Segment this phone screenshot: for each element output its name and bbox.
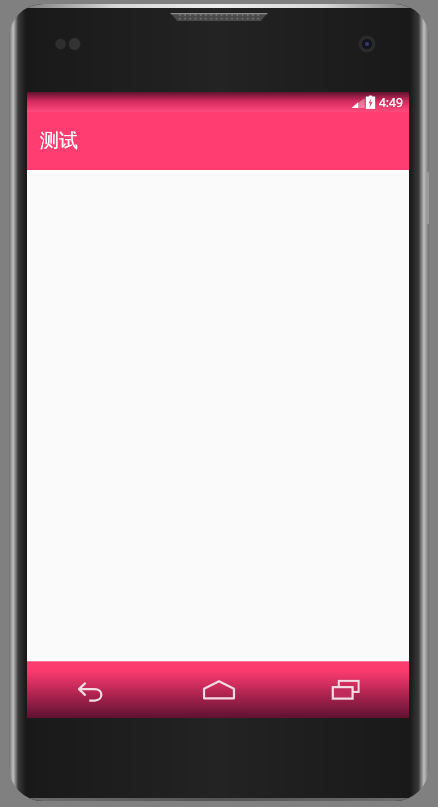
button[interactable]: Back xyxy=(27,661,155,718)
staticText: 4:49 xyxy=(379,94,403,110)
button[interactable]: Home xyxy=(155,661,282,718)
staticText: 测试 xyxy=(40,129,78,153)
button[interactable]: Recent apps xyxy=(282,661,409,718)
